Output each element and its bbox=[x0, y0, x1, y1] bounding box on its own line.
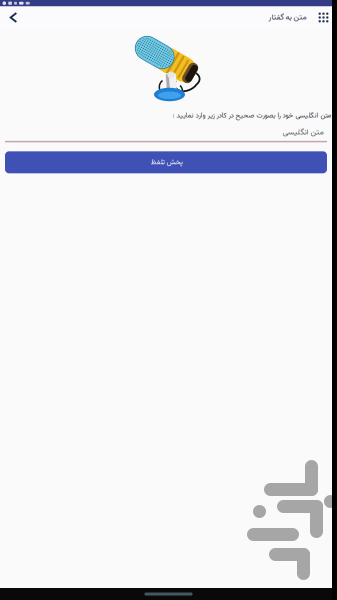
staticText: متن انگلیسی خود را بصورت صحیح در کادر زی… bbox=[172, 110, 331, 121]
staticText: متن به گفتار bbox=[268, 11, 306, 24]
button[interactable]: All apps bbox=[315, 6, 332, 28]
staticText: پخش تلفظ bbox=[150, 156, 182, 168]
staticText: متن انگلیسی bbox=[282, 126, 323, 139]
button[interactable]: پخش تلفظ bbox=[5, 151, 327, 173]
button[interactable]: Back bbox=[0, 6, 27, 28]
